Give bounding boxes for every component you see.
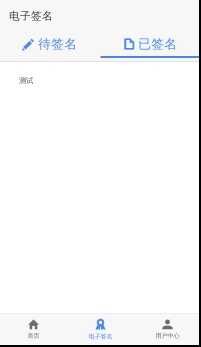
staticText: 用户中心 — [155, 332, 179, 339]
staticText: 测试 — [19, 76, 33, 85]
button[interactable]: 电子签名 — [67, 314, 134, 345]
button[interactable]: 待签名 — [0, 32, 100, 58]
staticText: 电子签名 — [88, 333, 112, 340]
button[interactable]: 已签名 — [100, 32, 201, 58]
staticText: 首页 — [27, 332, 39, 339]
button[interactable]: 首页 — [0, 314, 67, 345]
staticText: 已签名 — [138, 36, 177, 52]
staticText: 电子签名 — [9, 9, 53, 23]
staticText: 待签名 — [38, 36, 77, 52]
button[interactable]: 用户中心 — [134, 314, 201, 345]
